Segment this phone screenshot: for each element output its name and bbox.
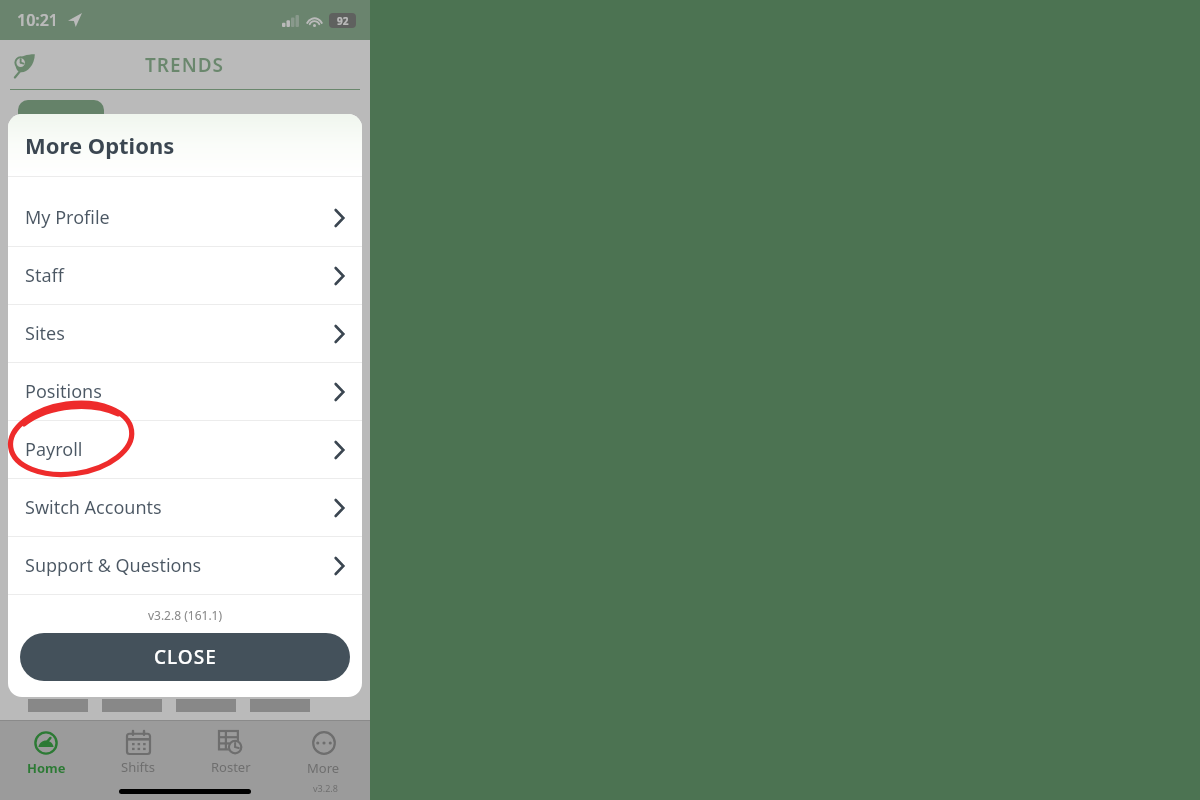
button[interactable]: Support & Questions — [8, 537, 362, 594]
staticText: Home — [27, 759, 66, 777]
button[interactable]: Home — [0, 721, 92, 800]
staticText: v3.2.8 (161.1) — [8, 607, 362, 623]
button[interactable]: Sites — [8, 305, 362, 362]
staticText: More — [307, 759, 340, 777]
other: More — [312, 731, 336, 755]
staticText: Switch Accounts — [25, 495, 162, 520]
other: Home — [34, 731, 58, 755]
staticText: 10:21 — [17, 9, 59, 31]
staticText: Roster — [211, 758, 251, 776]
staticText: More Options — [25, 130, 175, 160]
staticText: Positions — [25, 379, 102, 404]
staticText: My Profile — [25, 205, 110, 230]
staticText: TRENDS — [145, 52, 225, 78]
button[interactable]: Switch Accounts — [8, 479, 362, 536]
button[interactable]: Payroll — [8, 421, 362, 478]
button[interactable]: Roster — [184, 721, 277, 800]
button[interactable]: More — [277, 721, 370, 800]
other: Roster — [219, 731, 242, 754]
button[interactable]: Positions — [8, 363, 362, 420]
staticText: Support & Questions — [25, 553, 202, 578]
staticText: v3.2.8 — [313, 782, 338, 794]
staticText: Sites — [25, 321, 65, 346]
other: Shifts — [127, 731, 150, 754]
button[interactable]: Staff — [8, 247, 362, 304]
staticText: Staff — [25, 263, 64, 288]
staticText: CLOSE — [154, 644, 217, 670]
staticText: Payroll — [25, 437, 83, 462]
staticText: Shifts — [121, 758, 155, 776]
button[interactable]: CLOSE — [20, 633, 350, 681]
button[interactable]: My Profile — [8, 189, 362, 246]
staticText: 92 — [337, 14, 349, 28]
button[interactable]: Shifts — [92, 721, 184, 800]
